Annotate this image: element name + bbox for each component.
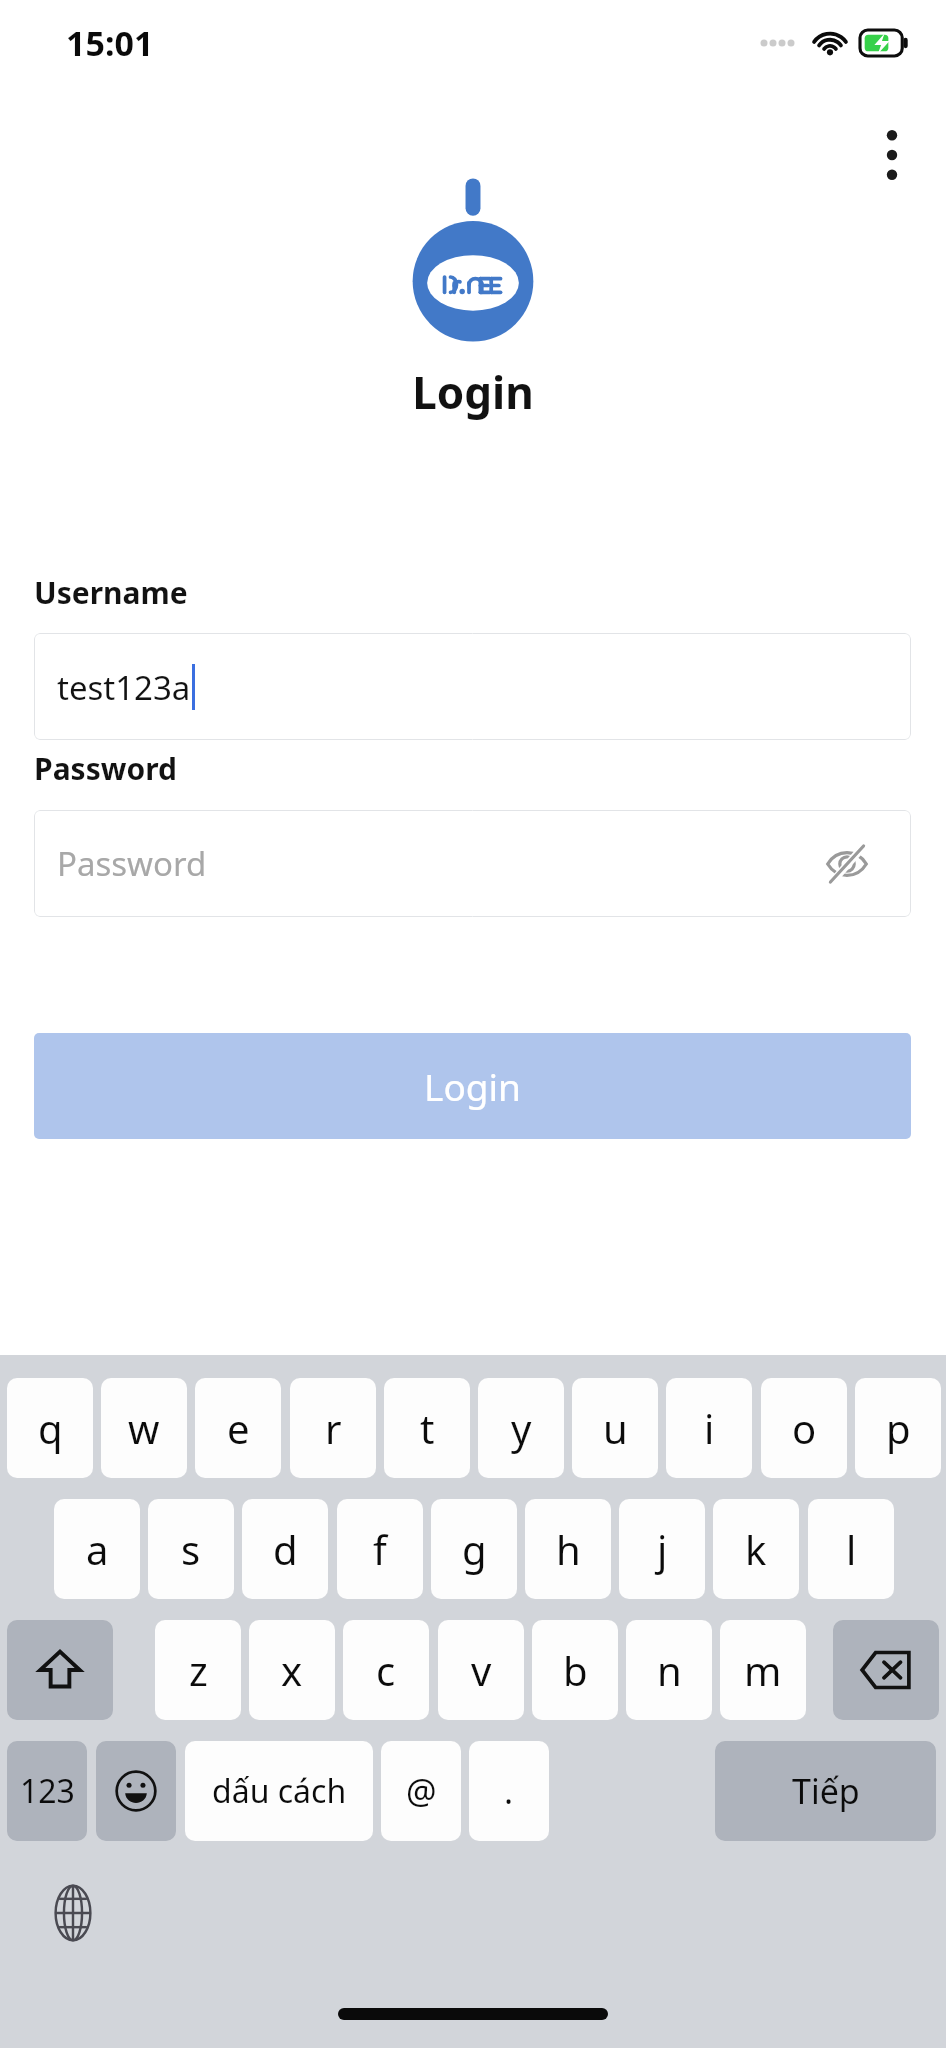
button[interactable]: d <box>242 1499 328 1599</box>
staticText: i <box>704 1401 715 1455</box>
staticText: k <box>745 1522 767 1576</box>
staticText: t <box>420 1401 435 1455</box>
button[interactable]: p <box>855 1378 941 1478</box>
staticText: Username <box>34 572 188 613</box>
button[interactable]: w <box>101 1378 187 1478</box>
staticText: Password <box>34 748 177 789</box>
button[interactable]: m <box>720 1620 806 1720</box>
button[interactable]: Login <box>34 1033 911 1139</box>
staticText: s <box>181 1522 201 1576</box>
staticText: n <box>657 1643 682 1697</box>
staticText: dấu cách <box>212 1769 347 1813</box>
staticText: g <box>462 1522 487 1576</box>
staticText: p <box>886 1401 911 1455</box>
staticText: test123a <box>57 665 191 710</box>
button[interactable]: k <box>713 1499 799 1599</box>
staticText: 123 <box>20 1769 75 1813</box>
staticText: l <box>846 1522 857 1576</box>
staticText: q <box>38 1401 63 1455</box>
staticText: c <box>376 1643 396 1697</box>
staticText: w <box>128 1401 160 1455</box>
staticText: Login <box>0 362 946 422</box>
button[interactable]: n <box>626 1620 712 1720</box>
button[interactable]: 123 <box>7 1741 87 1841</box>
button[interactable]: r <box>290 1378 376 1478</box>
staticText: @ <box>406 1768 437 1814</box>
button[interactable]: t <box>384 1378 470 1478</box>
staticText: y <box>511 1401 532 1455</box>
staticText: a <box>86 1522 109 1576</box>
button[interactable]: e <box>195 1378 281 1478</box>
button[interactable]: f <box>337 1499 423 1599</box>
button[interactable]: z <box>155 1620 241 1720</box>
button[interactable]: test123a <box>34 633 911 740</box>
staticText: j <box>657 1522 668 1576</box>
staticText: b <box>563 1643 588 1697</box>
staticText: m <box>744 1643 782 1697</box>
button[interactable]: s <box>148 1499 234 1599</box>
staticText: Password <box>57 841 207 886</box>
staticText: o <box>792 1401 817 1455</box>
button[interactable]: i <box>666 1378 752 1478</box>
button[interactable]: Emoji <box>96 1741 176 1841</box>
button[interactable]: @ <box>381 1741 461 1841</box>
button[interactable]: q <box>7 1378 93 1478</box>
staticText: Tiếp <box>792 1768 860 1814</box>
button[interactable]: Backspace <box>833 1620 939 1720</box>
button[interactable]: o <box>761 1378 847 1478</box>
button[interactable]: dấu cách <box>185 1741 373 1841</box>
button[interactable]: Show password <box>819 836 875 892</box>
button[interactable]: x <box>249 1620 335 1720</box>
staticText: 15:01 <box>66 20 154 66</box>
button[interactable]: l <box>808 1499 894 1599</box>
button[interactable]: a <box>54 1499 140 1599</box>
staticText: v <box>471 1643 492 1697</box>
button[interactable]: More options <box>855 115 929 195</box>
staticText: h <box>556 1522 581 1576</box>
button[interactable]: Password <box>34 810 911 917</box>
button[interactable]: y <box>478 1378 564 1478</box>
staticText: x <box>281 1643 303 1697</box>
button[interactable]: g <box>431 1499 517 1599</box>
staticText: r <box>325 1401 342 1455</box>
button[interactable]: v <box>438 1620 524 1720</box>
button[interactable]: Shift <box>7 1620 113 1720</box>
staticText: . <box>504 1768 514 1814</box>
button[interactable]: j <box>619 1499 705 1599</box>
button[interactable]: . <box>469 1741 549 1841</box>
staticText: e <box>227 1401 250 1455</box>
staticText: u <box>603 1401 628 1455</box>
button[interactable]: u <box>572 1378 658 1478</box>
button[interactable]: Change keyboard language <box>40 1880 106 1946</box>
button[interactable]: b <box>532 1620 618 1720</box>
staticText: d <box>273 1522 298 1576</box>
button[interactable]: c <box>343 1620 429 1720</box>
button[interactable]: h <box>525 1499 611 1599</box>
staticText: f <box>373 1522 387 1576</box>
staticText: Login <box>424 1061 521 1111</box>
staticText: z <box>189 1643 208 1697</box>
button[interactable]: Tiếp <box>715 1741 936 1841</box>
